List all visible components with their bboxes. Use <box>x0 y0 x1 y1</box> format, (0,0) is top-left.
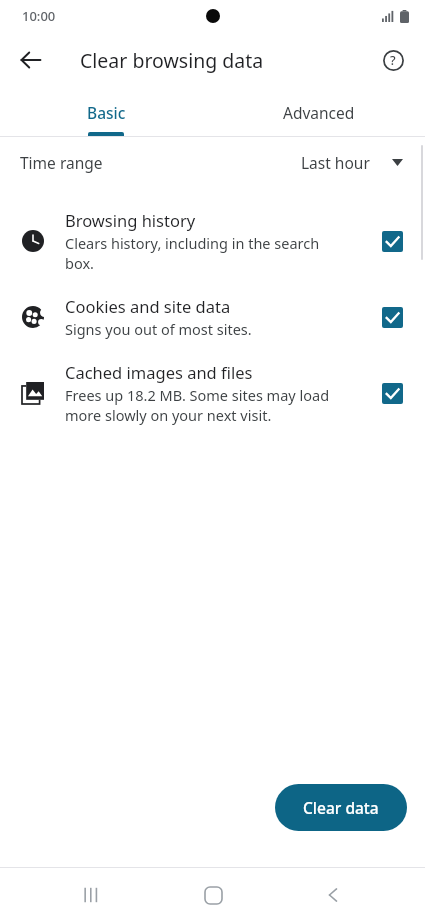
button[interactable]: Time range <box>0 137 425 187</box>
button[interactable]: Recent apps <box>64 868 120 922</box>
button[interactable]: Toggle Browsing history <box>375 224 409 258</box>
button[interactable]: Basic <box>0 88 212 136</box>
staticText: Advanced <box>283 102 355 123</box>
button[interactable]: Cached images and files <box>0 361 425 425</box>
staticText: ? <box>390 52 396 69</box>
button[interactable]: Toggle Cookies and site data <box>375 300 409 334</box>
staticText: Clears history, including in the search … <box>65 233 320 273</box>
button[interactable]: Clear data <box>275 784 407 831</box>
staticText: Signs you out of most sites. <box>65 319 252 339</box>
staticText: Cached images and files <box>65 361 253 383</box>
button[interactable]: Cookies and site data <box>0 295 425 339</box>
button[interactable]: Browsing history <box>0 209 425 273</box>
button[interactable]: Back <box>8 37 54 83</box>
staticText: Frees up 18.2 MB. Some sites may load mo… <box>65 385 330 425</box>
staticText: Last hour <box>301 152 370 173</box>
staticText: Basic <box>87 102 126 123</box>
staticText: Clear browsing data <box>80 47 264 74</box>
button[interactable]: Help <box>371 38 415 82</box>
button[interactable]: Back <box>305 868 361 922</box>
button[interactable]: Advanced <box>212 88 425 136</box>
button[interactable]: Home <box>185 868 241 922</box>
staticText: 10:00 <box>22 7 56 25</box>
staticText: Clear data <box>303 797 379 818</box>
staticText: Cookies and site data <box>65 295 231 317</box>
staticText: Browsing history <box>65 209 196 231</box>
button[interactable]: Toggle Cached images and files <box>375 376 409 410</box>
staticText: Time range <box>20 152 103 173</box>
